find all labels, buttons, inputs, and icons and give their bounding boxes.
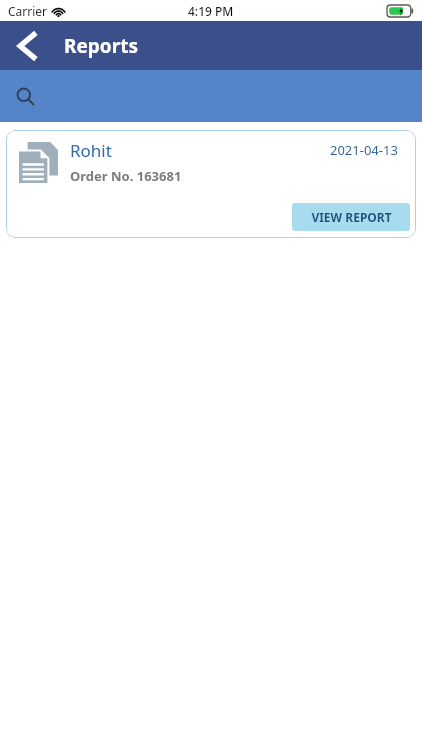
staticText: 4:19 PM (188, 3, 234, 19)
staticText: Reports (64, 33, 138, 59)
button[interactable]: Back (0, 21, 54, 70)
staticText: Rohit (70, 139, 112, 162)
staticText: Order No. 163681 (70, 167, 182, 185)
staticText: VIEW REPORT (311, 209, 392, 225)
staticText: Carrier (8, 3, 48, 19)
staticText: 2021-04-13 (330, 141, 398, 159)
button[interactable]: VIEW REPORT (292, 203, 410, 231)
button[interactable]: Search (0, 70, 422, 122)
button[interactable]: Rohit (6, 130, 416, 238)
